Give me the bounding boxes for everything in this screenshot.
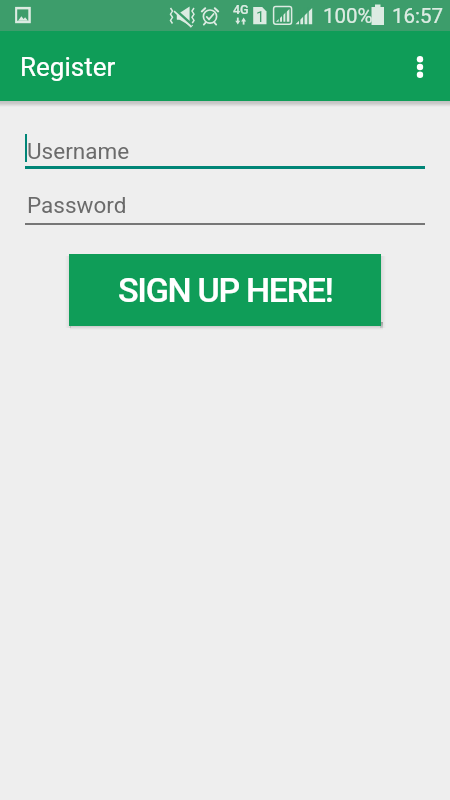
button[interactable]: Password	[25, 189, 425, 225]
staticText: SIGN UP HERE!	[118, 270, 333, 310]
staticText: Password	[27, 192, 127, 218]
button[interactable]: SIGN UP HERE!	[69, 254, 381, 326]
staticText: Username	[27, 138, 130, 164]
staticText: 16:57	[392, 4, 444, 28]
staticText: 100%	[323, 4, 373, 28]
staticText: Register	[20, 52, 116, 82]
staticText: 1	[256, 8, 265, 26]
staticText: 4G	[233, 2, 249, 17]
button[interactable]: More options	[396, 43, 444, 91]
button[interactable]: Username	[25, 130, 425, 169]
